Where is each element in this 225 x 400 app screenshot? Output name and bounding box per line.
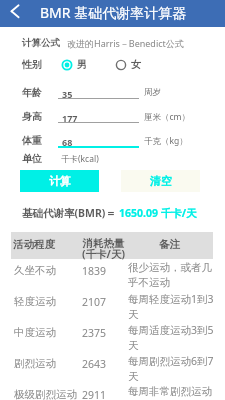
staticText: 2375	[82, 326, 107, 340]
staticText: 中度运动	[14, 326, 56, 339]
staticText: 年龄	[22, 86, 42, 99]
staticText: 轻度运动	[14, 295, 56, 308]
staticText: 计算	[49, 174, 71, 188]
staticText: 女	[131, 58, 141, 71]
staticText: 每周非常剧烈运动	[128, 385, 212, 398]
staticText: 1650.09 千卡/天	[119, 206, 197, 220]
staticText: 每周剧烈运动6到7天	[128, 354, 215, 383]
staticText: 单位	[22, 152, 42, 165]
staticText: 每周适度运动3到5天	[128, 323, 215, 352]
staticText: 性别	[22, 58, 42, 71]
staticText: 很少运动，或者几乎不运动	[128, 261, 215, 289]
staticText: 极级剧烈运动	[14, 388, 77, 400]
staticText: 2643	[82, 357, 107, 371]
staticText: 1839	[82, 264, 107, 278]
staticText: 周岁	[144, 87, 161, 98]
staticText: 177	[62, 112, 78, 124]
staticText: 计算公式	[22, 37, 60, 49]
staticText: 2107	[82, 295, 107, 309]
button[interactable]: 计算	[20, 170, 99, 192]
staticText: 清空	[150, 174, 172, 188]
staticText: 35	[62, 88, 73, 100]
staticText: 厘米（cm）	[144, 111, 191, 123]
staticText: 身高	[22, 110, 42, 123]
staticText: 基础代谢率(BMR)＝	[22, 206, 116, 220]
staticText: 久坐不动	[14, 264, 56, 277]
staticText: 体重	[22, 134, 42, 147]
staticText: 活动程度	[13, 238, 55, 251]
button[interactable]: 清空	[121, 170, 200, 192]
staticText: 备注	[159, 238, 180, 251]
button[interactable]: 女	[115, 58, 141, 71]
staticText: 男	[77, 58, 87, 71]
staticText: 2911	[82, 388, 107, 400]
staticText: 剧烈运动	[14, 357, 56, 370]
button[interactable]: 男	[61, 58, 87, 71]
staticText: 千卡(kcal)	[61, 153, 99, 165]
staticText: 68	[62, 136, 73, 148]
staticText: 消耗热量 (千卡/天)	[82, 237, 125, 261]
staticText: BMR 基础代谢率计算器	[40, 3, 187, 22]
staticText: 改进的Harris－Benedict公式	[67, 37, 184, 49]
button[interactable]: Back	[6, 0, 30, 24]
staticText: 每周轻度运动1到3天	[128, 292, 215, 321]
staticText: 千克（kg）	[144, 135, 188, 147]
